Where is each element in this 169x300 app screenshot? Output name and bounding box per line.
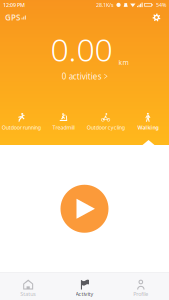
button[interactable]: 0 activities: [62, 71, 107, 82]
staticText: 54%: [156, 1, 166, 9]
staticText: 0.00: [50, 28, 112, 70]
staticText: Treadmill: [52, 124, 74, 131]
button[interactable]: Activity: [56, 273, 113, 300]
button[interactable]: Start workout: [60, 185, 108, 233]
button[interactable]: Walking: [127, 113, 169, 131]
button[interactable]: Treadmill: [42, 113, 84, 131]
staticText: 0 activities: [62, 71, 102, 82]
button[interactable]: Profile: [113, 273, 169, 300]
staticText: Outdoor running: [2, 124, 41, 131]
staticText: Status: [20, 290, 36, 298]
button[interactable]: Settings: [148, 10, 165, 25]
staticText: Outdoor cycling: [87, 124, 125, 131]
staticText: GPS: [5, 12, 20, 23]
staticText: 28.1K/s: [96, 1, 114, 9]
staticText: Activity: [75, 290, 93, 298]
button[interactable]: Outdoor running: [0, 113, 42, 131]
staticText: 12:09 PM: [3, 1, 25, 9]
staticText: km: [118, 58, 128, 67]
staticText: Profile: [133, 290, 148, 298]
button[interactable]: Outdoor cycling: [84, 113, 127, 131]
staticText: Walking: [137, 124, 158, 131]
button[interactable]: Status: [0, 273, 56, 300]
